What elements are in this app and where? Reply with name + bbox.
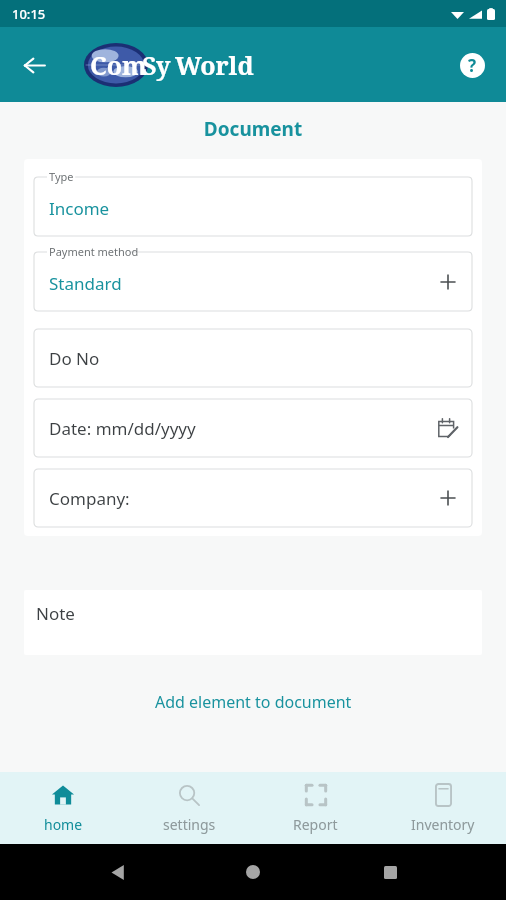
staticText: Document bbox=[0, 116, 506, 142]
staticText: Standard bbox=[49, 272, 122, 295]
button[interactable]: Home bbox=[233, 852, 273, 892]
staticText: Income bbox=[49, 197, 110, 220]
button[interactable]: Back bbox=[97, 852, 137, 892]
staticText: Payment method bbox=[49, 244, 139, 259]
button[interactable]: Date: mm/dd/yyyy bbox=[34, 399, 472, 457]
other: Add bbox=[439, 489, 457, 507]
button[interactable]: Recents bbox=[370, 852, 410, 892]
button[interactable]: home bbox=[0, 772, 126, 844]
other: Add bbox=[439, 273, 457, 291]
staticText: 10:15 bbox=[12, 5, 46, 23]
staticText: World bbox=[175, 48, 254, 82]
staticText: Note bbox=[36, 602, 75, 625]
button[interactable]: Add element to document bbox=[0, 687, 506, 717]
button[interactable]: Company: bbox=[34, 469, 472, 527]
other: Pick date bbox=[438, 418, 458, 438]
button[interactable]: Type bbox=[34, 168, 472, 236]
staticText: Report bbox=[293, 815, 338, 834]
button[interactable]: Do No bbox=[34, 329, 472, 387]
staticText: Type bbox=[49, 169, 74, 184]
staticText: Com bbox=[90, 48, 147, 82]
staticText: Do No bbox=[49, 347, 100, 370]
staticText: Company: bbox=[49, 487, 130, 510]
button[interactable]: Report bbox=[252, 772, 379, 844]
staticText: Sy bbox=[142, 48, 171, 82]
staticText: home bbox=[44, 815, 83, 834]
button[interactable]: Back bbox=[12, 43, 56, 87]
button[interactable]: settings bbox=[126, 772, 252, 844]
staticText: Inventory bbox=[411, 815, 475, 834]
button[interactable]: Payment method bbox=[34, 243, 472, 311]
button[interactable]: Help bbox=[452, 45, 492, 85]
staticText: ? bbox=[468, 54, 477, 77]
staticText: Add element to document bbox=[155, 691, 352, 713]
staticText: Date: mm/dd/yyyy bbox=[49, 417, 196, 440]
staticText: settings bbox=[163, 815, 216, 834]
button[interactable]: Inventory bbox=[379, 772, 506, 844]
button[interactable]: Note bbox=[24, 590, 482, 655]
